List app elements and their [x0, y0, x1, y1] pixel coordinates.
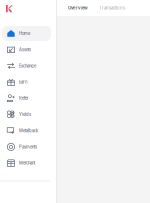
staticText: Earn: [19, 80, 27, 85]
button[interactable]: Overview: [68, 5, 88, 11]
button[interactable]: Earn: [2, 75, 51, 90]
button[interactable]: Refer: [2, 91, 51, 106]
staticText: Metalback: [19, 128, 38, 133]
button[interactable]: Home: [2, 26, 51, 41]
staticText: Payments: [19, 144, 37, 149]
staticText: Overview: [68, 5, 88, 11]
staticText: Transactions: [99, 5, 125, 11]
button[interactable]: Assets: [2, 42, 51, 57]
staticText: Refer: [19, 96, 29, 101]
button[interactable]: Transactions: [88, 5, 125, 11]
button[interactable]: Exchange: [2, 58, 51, 73]
staticText: Merchant: [19, 161, 35, 166]
staticText: Home: [19, 31, 30, 36]
button[interactable]: Metalback: [2, 123, 51, 138]
staticText: Yields: [19, 112, 31, 117]
button[interactable]: Payments: [2, 139, 51, 154]
staticText: Exchange: [19, 63, 36, 68]
staticText: Assets: [19, 47, 31, 52]
button[interactable]: Yields: [2, 107, 51, 122]
button[interactable]: Merchant: [2, 156, 51, 171]
